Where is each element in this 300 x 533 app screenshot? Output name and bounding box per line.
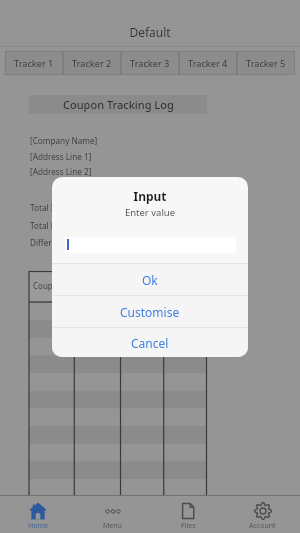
staticText: Cancel	[131, 335, 169, 351]
staticText: Coupon Tracking Log	[63, 97, 174, 112]
button[interactable]: Tracker 3	[121, 51, 179, 75]
button[interactable]: Coupon Tracking Log	[29, 95, 207, 114]
button[interactable]: Menu	[75, 496, 150, 533]
staticText: Menu	[103, 521, 122, 531]
staticText: [Address Line 2]	[30, 166, 92, 177]
staticText: Tracker 4	[188, 57, 228, 70]
button[interactable]: Tracker 5	[237, 51, 295, 75]
staticText: Tracker 3	[130, 57, 170, 70]
other: Menu	[104, 502, 122, 520]
staticText: Ok	[142, 272, 158, 288]
button[interactable]: Ok	[52, 264, 248, 295]
staticText: Tracker 5	[246, 57, 286, 70]
other: Files	[179, 502, 197, 520]
button[interactable]	[65, 237, 236, 253]
staticText: Files	[181, 521, 196, 531]
staticText: [Address Line 1]	[30, 151, 92, 162]
staticText: Tracker 2	[72, 57, 112, 70]
button[interactable]: Cancel	[52, 328, 248, 357]
button[interactable]: Home	[0, 496, 75, 533]
other: Home	[29, 502, 47, 520]
button[interactable]: Default	[0, 0, 300, 46]
button[interactable]: Account	[225, 496, 300, 533]
staticText: Coupon	[33, 280, 63, 291]
staticText: Total Issued	[30, 202, 77, 213]
staticText: Default	[0, 24, 300, 40]
staticText: Total Redeemed	[30, 220, 93, 231]
button[interactable]: Tracker 4	[179, 51, 237, 75]
button[interactable]: Tracker 1	[5, 51, 63, 75]
button[interactable]: Tracker 2	[63, 51, 121, 75]
staticText: Tracker 1	[14, 57, 54, 70]
button[interactable]: Files	[150, 496, 225, 533]
other: Account	[254, 502, 272, 520]
staticText: Difference	[30, 237, 70, 248]
staticText: Input	[52, 188, 248, 204]
staticText: Home	[28, 521, 48, 531]
staticText: Customise	[120, 304, 180, 320]
staticText: Enter value	[52, 206, 248, 219]
button[interactable]: Customise	[52, 296, 248, 327]
staticText: [Company Name]	[30, 135, 98, 146]
staticText: Account	[249, 521, 276, 531]
